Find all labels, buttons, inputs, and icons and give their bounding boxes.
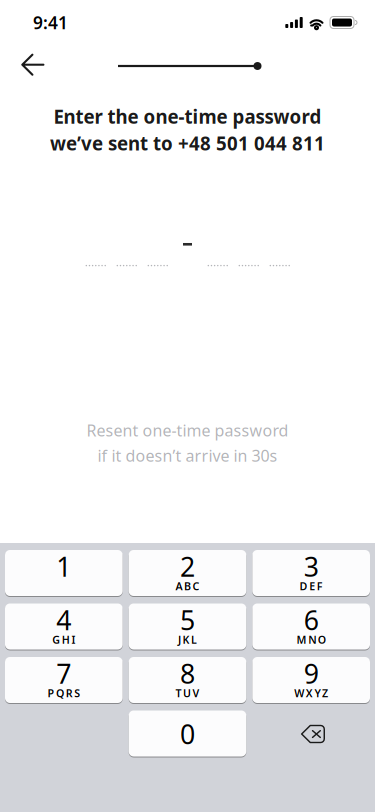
staticText: 7 <box>56 656 71 691</box>
staticText: DEF <box>300 579 323 593</box>
staticText: 6 <box>304 602 319 638</box>
staticText: if it doesn’t arrive in 30s <box>97 445 277 466</box>
button[interactable]: 6 <box>252 603 370 650</box>
staticText: 9:41 <box>33 11 68 34</box>
staticText: Enter the one-time password <box>53 104 321 129</box>
staticText: GHI <box>52 632 75 647</box>
staticText: ABC <box>175 579 200 593</box>
staticText: 4 <box>56 602 71 638</box>
staticText: Resent one-time password <box>86 420 288 441</box>
button[interactable]: 9 <box>252 657 370 704</box>
button[interactable]: 4 <box>5 603 123 650</box>
button[interactable]: 0 <box>129 710 246 757</box>
button[interactable]: 7 <box>5 657 123 704</box>
button[interactable]: 1 <box>5 550 123 597</box>
staticText: 1 <box>56 549 71 584</box>
button[interactable]: 3 <box>252 550 370 597</box>
staticText: 9 <box>304 656 319 691</box>
staticText: we’ve sent to +48 501 044 811 <box>50 131 325 156</box>
button[interactable]: Delete <box>252 710 370 757</box>
button[interactable]: Back <box>11 45 55 85</box>
button[interactable]: 2 <box>129 550 246 597</box>
staticText: 8 <box>180 656 195 691</box>
staticText: 5 <box>180 602 195 638</box>
staticText: MNO <box>297 632 326 647</box>
staticText: PQRS <box>47 686 80 700</box>
staticText: JKL <box>178 632 197 647</box>
button[interactable]: 8 <box>129 657 246 704</box>
button[interactable]: 5 <box>129 603 246 650</box>
staticText: 3 <box>304 549 319 584</box>
staticText: TUV <box>175 686 200 700</box>
staticText: 0 <box>180 716 195 752</box>
staticText: WXYZ <box>294 686 328 700</box>
staticText: 2 <box>180 549 195 584</box>
